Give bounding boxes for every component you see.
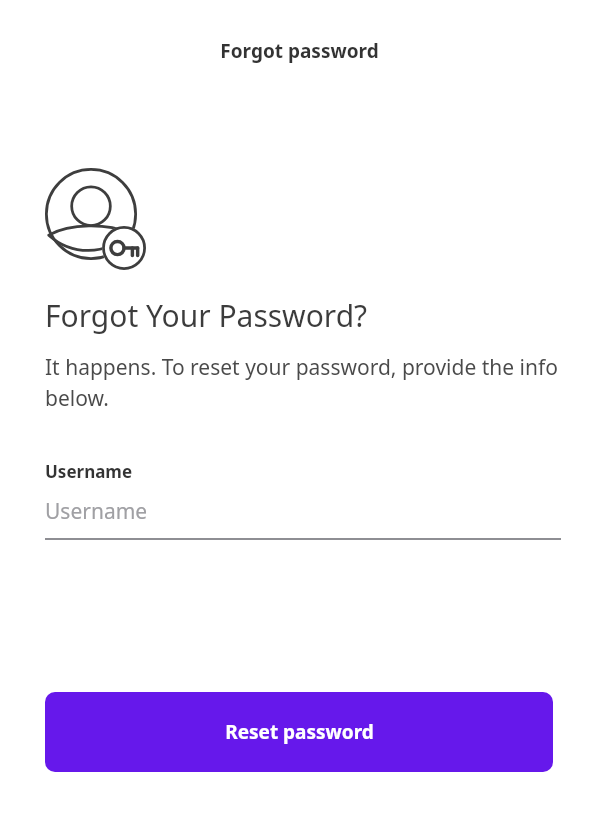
staticText: Username — [45, 460, 133, 483]
staticText: Forgot password — [220, 38, 379, 64]
staticText: Forgot Your Password? — [45, 295, 368, 336]
other: Account password — [45, 168, 147, 265]
staticText: Reset password — [225, 719, 374, 745]
staticText: Username — [45, 497, 148, 526]
staticText: It happens. To reset your password, prov… — [45, 353, 561, 412]
button[interactable]: Username — [45, 497, 561, 540]
button[interactable]: Reset password — [45, 692, 553, 772]
